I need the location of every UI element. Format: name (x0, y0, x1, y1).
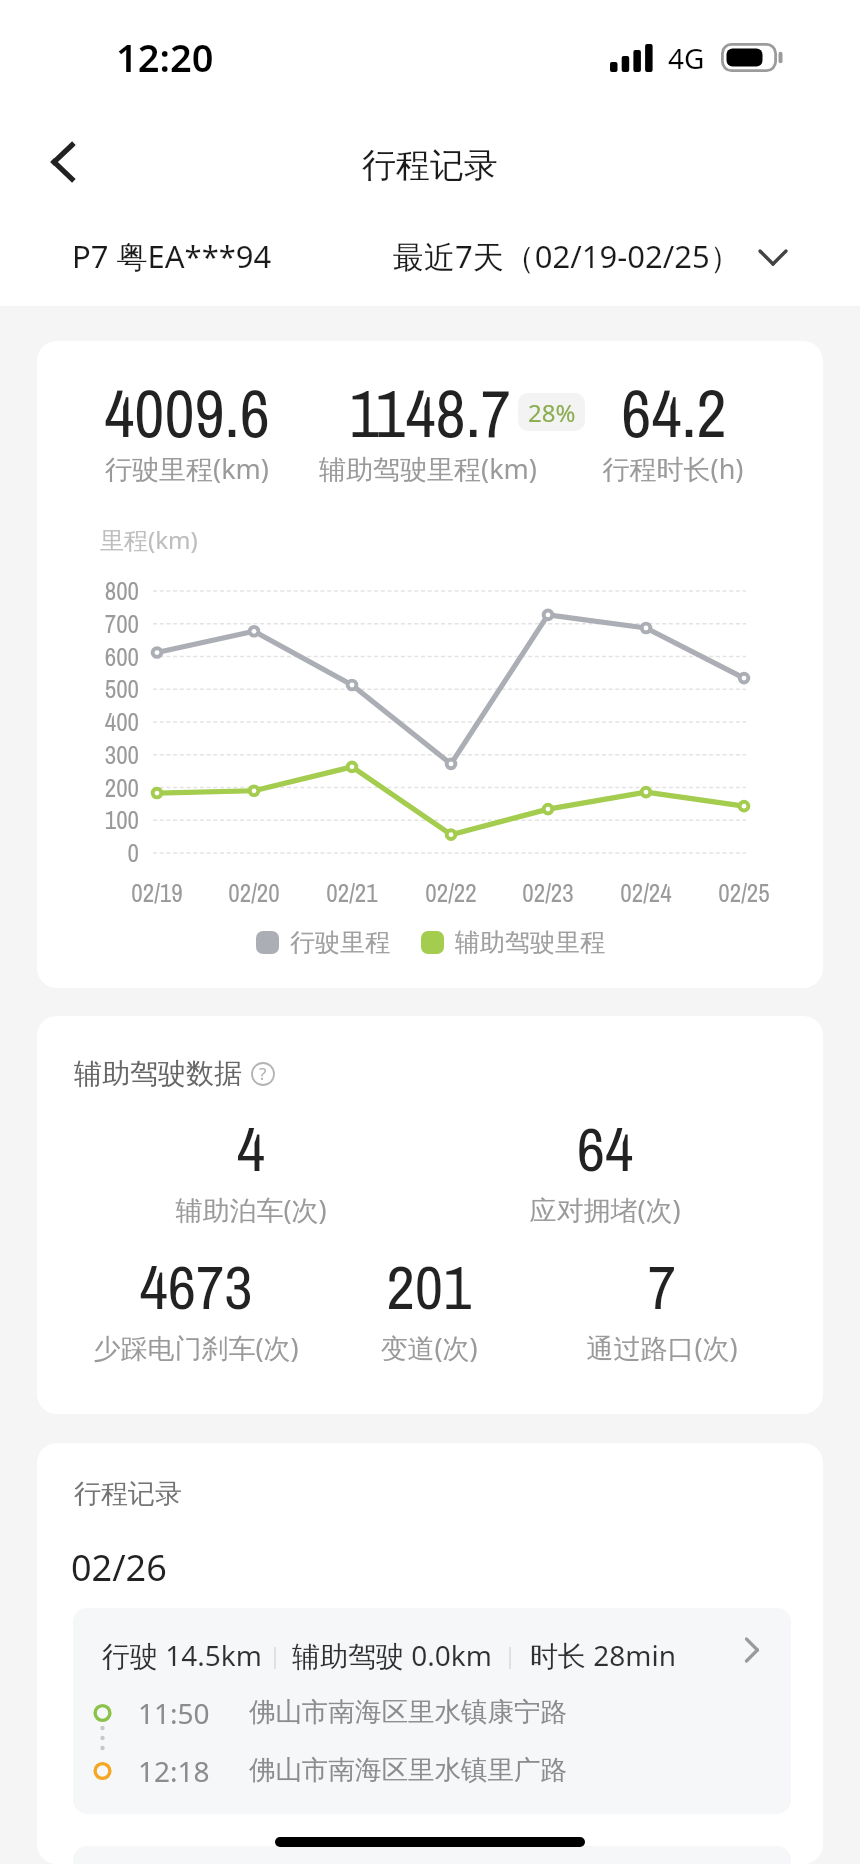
staticText: 时长 28min (530, 1636, 677, 1674)
staticText: 02/19 (107, 876, 207, 910)
staticText: 02/21 (302, 876, 402, 910)
other: Trip detail (733, 1634, 765, 1666)
staticText: 28% (528, 396, 576, 429)
button[interactable]: Back (31, 130, 95, 194)
staticText: 应对拥堵(次) (395, 1191, 815, 1228)
staticText: 02/26 (71, 1543, 167, 1592)
staticText: 4 (41, 1107, 461, 1191)
staticText: 02/22 (401, 876, 501, 910)
staticText: 02/20 (204, 876, 304, 910)
staticText: 4G (668, 39, 705, 77)
staticText: 辅助泊车(次) (41, 1191, 461, 1228)
staticText: 1148.7 (220, 369, 640, 458)
staticText: 64.2 (464, 369, 823, 458)
staticText: 辅助驾驶 0.0km (292, 1636, 492, 1674)
other: Help (251, 1062, 275, 1086)
staticText: 行驶 14.5km (102, 1636, 262, 1674)
staticText: 200 (69, 771, 139, 805)
button[interactable]: 行驶 14.5km (73, 1608, 791, 1814)
staticText: 行驶里程(km) (37, 450, 397, 487)
staticText: 佛山市南海区里水镇里广路 (249, 1753, 567, 1786)
staticText: 02/23 (498, 876, 598, 910)
staticText: 辅助驾驶里程(km) (218, 450, 638, 487)
staticText: 12:20 (116, 31, 214, 83)
staticText: 行驶里程 (290, 927, 390, 958)
staticText: 02/24 (596, 876, 696, 910)
staticText: 通过路口(次) (452, 1329, 823, 1366)
staticText: 400 (69, 705, 139, 739)
staticText: 最近7天（02/19-02/25） (393, 235, 741, 277)
staticText: 300 (69, 738, 139, 772)
staticText: 11:50 (138, 1694, 210, 1732)
staticText: 800 (69, 574, 139, 608)
button[interactable]: 行驶 14.5km (73, 1846, 791, 1864)
staticText: 600 (69, 640, 139, 674)
staticText: 行程时长(h) (463, 450, 823, 487)
staticText: 变道(次) (219, 1329, 639, 1366)
staticText: 4673 (37, 1245, 406, 1329)
staticText: 201 (219, 1245, 639, 1329)
staticText: P7 粤EA***94 (72, 235, 272, 277)
staticText: 佛山市南海区里水镇康宁路 (249, 1695, 567, 1728)
staticText: 02/25 (694, 876, 794, 910)
button[interactable]: 最近7天（02/19-02/25） (393, 235, 785, 277)
staticText: 700 (69, 607, 139, 641)
staticText: 0 (69, 836, 139, 870)
staticText: 辅助驾驶数据 (74, 1056, 242, 1091)
button[interactable]: 辅助驾驶数据 (74, 1056, 275, 1091)
staticText: 64 (395, 1107, 815, 1191)
staticText: ? (259, 1062, 267, 1085)
staticText: 100 (69, 803, 139, 837)
staticText: 7 (452, 1245, 823, 1329)
staticText: 行程记录 (74, 1477, 182, 1511)
staticText: 4009.6 (37, 369, 397, 458)
staticText: 里程(km) (100, 523, 198, 556)
staticText: 12:18 (138, 1752, 210, 1790)
staticText: 500 (69, 672, 139, 706)
staticText: 辅助驾驶里程 (455, 927, 605, 958)
staticText: 少踩电门刹车(次) (37, 1329, 406, 1366)
staticText: 行程记录 (0, 144, 860, 187)
